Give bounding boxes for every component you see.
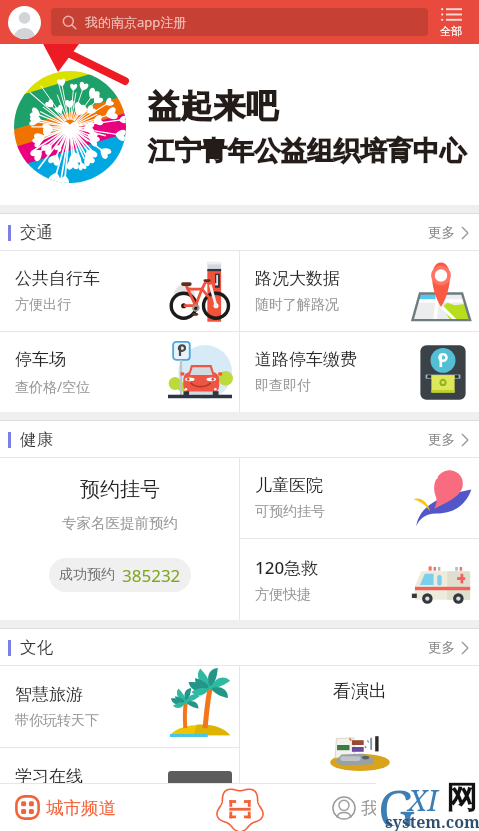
- button[interactable]: 学习在线: [0, 748, 239, 783]
- staticText: 成功预约: [59, 566, 115, 584]
- button[interactable]: 看演出: [240, 666, 479, 783]
- staticText: 带你玩转天下: [15, 712, 99, 730]
- staticText: 更多: [428, 431, 455, 448]
- staticText: system.com: [385, 811, 479, 831]
- button[interactable]: 全部: [431, 0, 471, 44]
- staticText: G: [378, 773, 416, 826]
- staticText: 全部: [440, 24, 462, 38]
- staticText: 我的南京app注册: [85, 13, 187, 31]
- staticText: 城市频道: [46, 797, 116, 819]
- staticText: 方便出行: [15, 296, 71, 314]
- staticText: 385232: [122, 564, 181, 587]
- staticText: 方便快捷: [255, 586, 311, 604]
- button[interactable]: 路况大数据: [240, 251, 479, 331]
- staticText: 更多: [428, 224, 455, 241]
- button[interactable]: 道路停车缴费: [240, 332, 479, 412]
- staticText: 可预约挂号: [255, 503, 325, 521]
- staticText: 益起来吧: [148, 86, 279, 126]
- button[interactable]: 更多: [416, 421, 479, 458]
- staticText: 儿童医院: [255, 475, 323, 496]
- staticText: 智慧旅游: [15, 684, 83, 705]
- button[interactable]: 智慧旅游: [0, 666, 239, 747]
- staticText: 交通: [20, 222, 53, 243]
- staticText: 停车场: [15, 349, 66, 370]
- button[interactable]: 城市频道: [0, 784, 160, 831]
- button[interactable]: 儿童医院: [240, 458, 479, 538]
- staticText: 文化: [20, 637, 53, 658]
- staticText: 健康: [20, 429, 53, 450]
- staticText: 预约挂号: [80, 477, 160, 502]
- button[interactable]: 我的: [319, 784, 479, 831]
- staticText: 路况大数据: [255, 268, 340, 289]
- button[interactable]: 停车场: [0, 332, 239, 412]
- button[interactable]: 更多: [416, 629, 479, 666]
- staticText: 更多: [428, 639, 455, 656]
- staticText: 随时了解路况: [255, 296, 339, 314]
- button[interactable]: Scan QR code: [205, 784, 275, 831]
- button[interactable]: 更多: [416, 214, 479, 251]
- button[interactable]: 120急救: [240, 539, 479, 620]
- staticText: 我的: [361, 797, 396, 819]
- button[interactable]: 我的南京app注册: [51, 8, 428, 36]
- staticText: XI: [408, 780, 438, 819]
- staticText: 江宁青年公益组织培育中心: [148, 134, 466, 167]
- staticText: 网: [446, 778, 477, 817]
- staticText: 即查即付: [255, 377, 311, 395]
- staticText: 查价格/空位: [15, 377, 91, 396]
- staticText: 道路停车缴费: [255, 349, 357, 370]
- button[interactable]: 公共自行车: [0, 251, 239, 331]
- staticText: 公共自行车: [15, 268, 100, 289]
- staticText: 专家名医提前预约: [62, 514, 178, 532]
- staticText: 学习在线: [15, 766, 83, 783]
- button[interactable]: 预约挂号: [0, 458, 239, 620]
- staticText: 看演出: [333, 680, 387, 703]
- staticText: 120急救: [255, 556, 319, 579]
- button[interactable]: Profile: [8, 6, 41, 39]
